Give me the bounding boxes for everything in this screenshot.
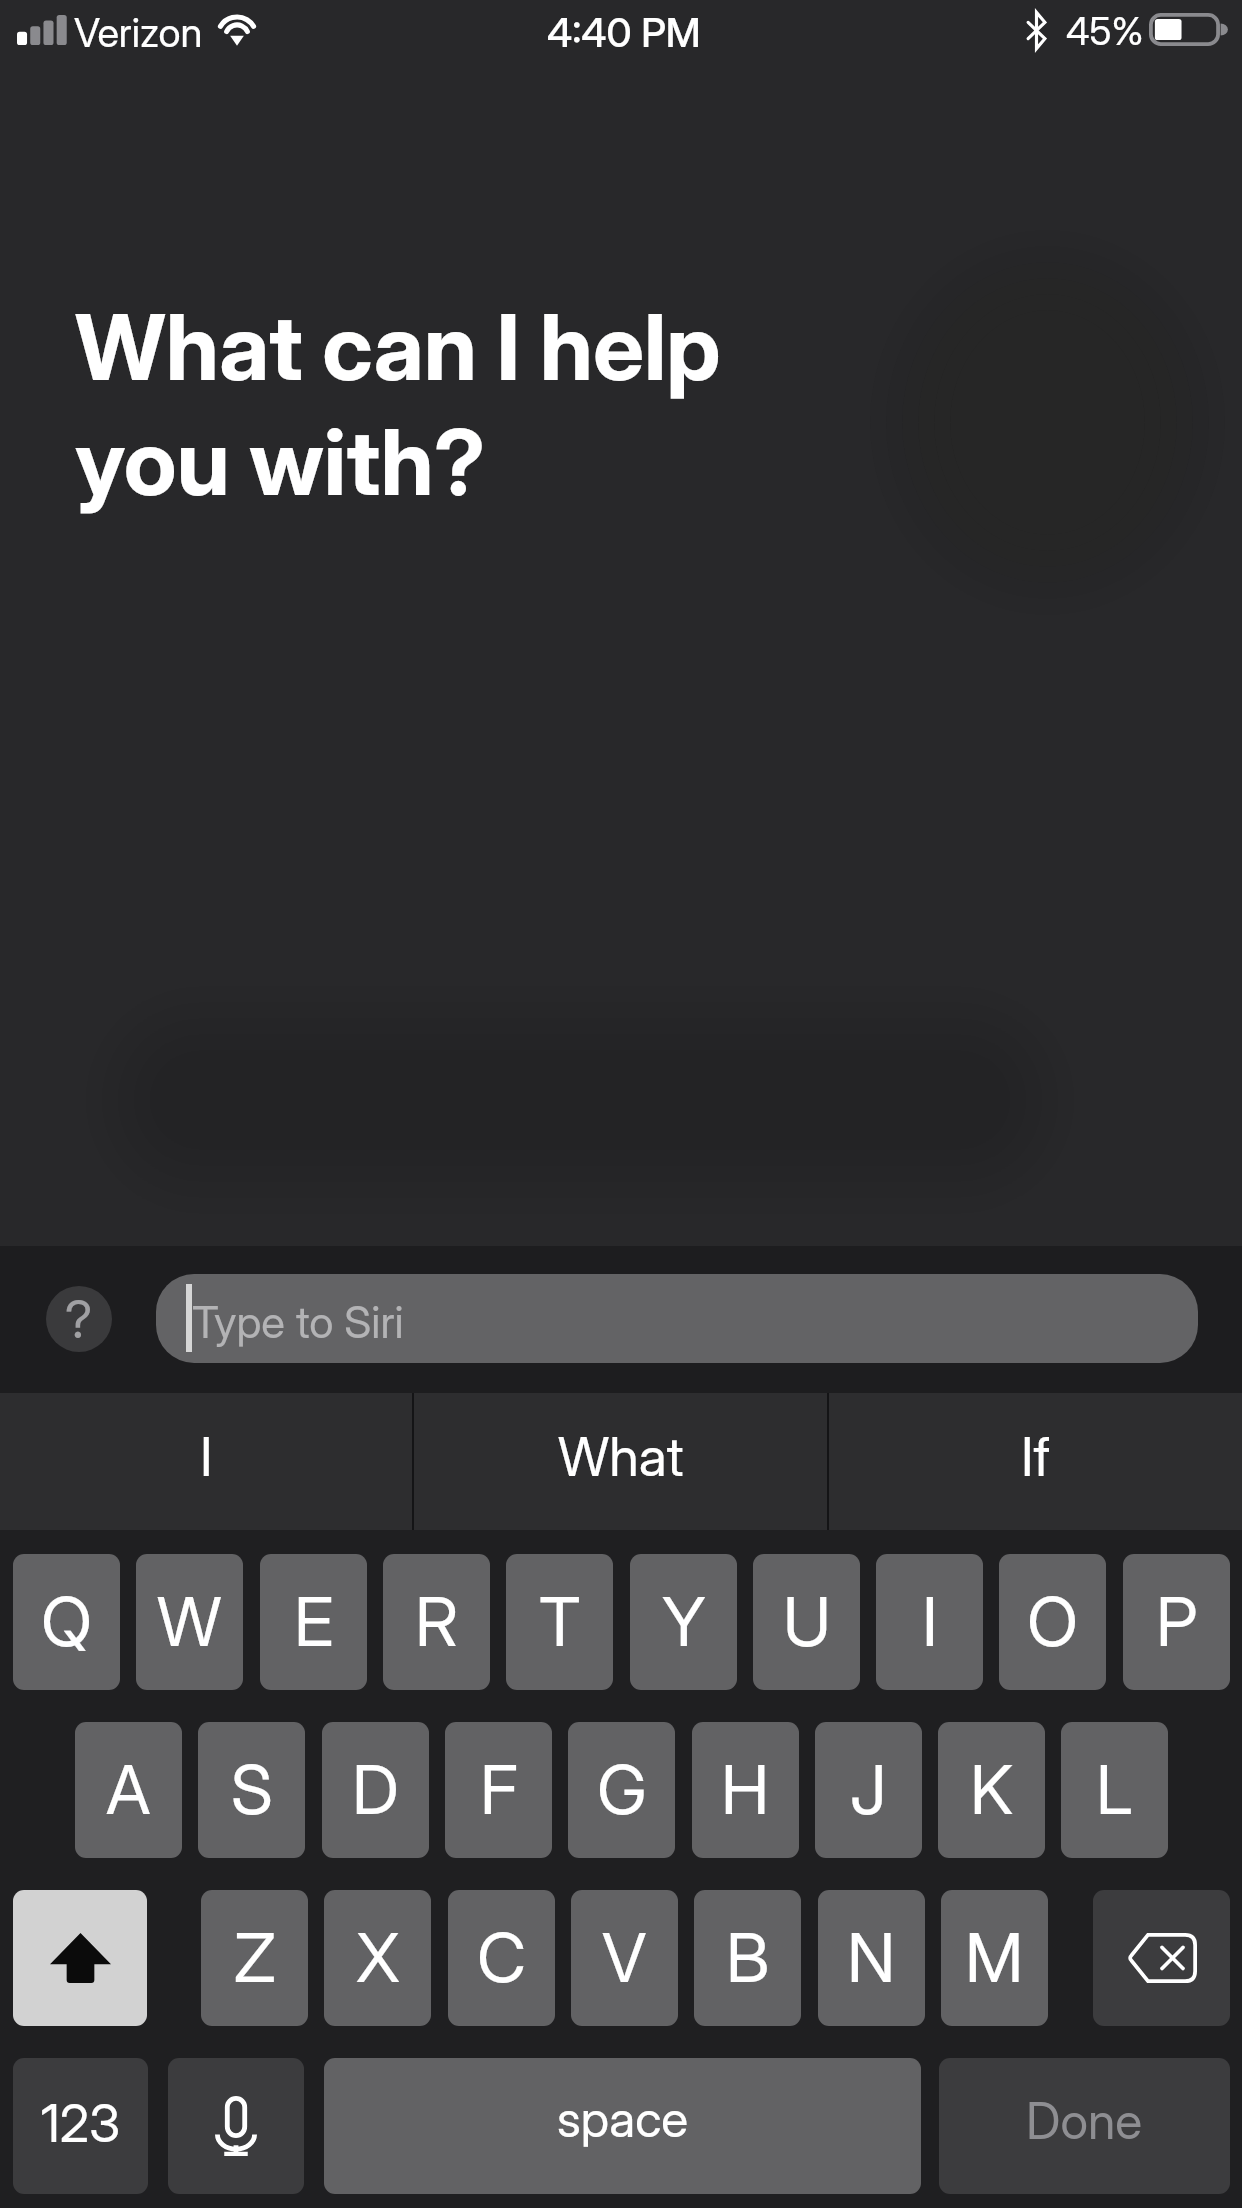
staticText: S [231,1748,273,1830]
staticText: Done [1026,2091,1143,2151]
staticText: N [847,1916,896,1998]
staticText: Type to Siri [192,1295,404,1348]
staticText: Y [662,1580,706,1662]
button[interactable]: B [694,1890,801,2026]
staticText: C [477,1916,527,1998]
button[interactable]: H [692,1722,799,1858]
staticText: O [1027,1580,1078,1662]
button[interactable]: W [136,1554,243,1690]
staticText: space [557,2089,689,2149]
staticText: V [602,1916,647,1998]
button[interactable]: Dictate [168,2058,304,2194]
staticText: T [539,1580,581,1662]
button[interactable]: space [324,2058,921,2194]
staticText: I [200,1424,213,1489]
staticText: ? [65,1288,93,1351]
button[interactable]: J [815,1722,922,1858]
staticText: G [597,1748,647,1830]
button[interactable]: D [322,1722,429,1858]
button[interactable]: What [414,1393,827,1530]
button[interactable]: X [324,1890,431,2026]
staticText: A [106,1748,151,1830]
staticText: J [850,1748,887,1830]
staticText: D [352,1748,399,1830]
button[interactable]: O [999,1554,1106,1690]
button[interactable]: L [1061,1722,1168,1858]
button[interactable]: U [753,1554,860,1690]
staticText: 123 [41,2092,121,2155]
staticText: 4:40 PM [547,8,701,56]
staticText: Q [41,1580,92,1662]
button[interactable]: C [448,1890,555,2026]
staticText: K [970,1748,1014,1830]
staticText: What can I help you with? [75,292,721,517]
button[interactable]: Siri help [46,1286,112,1352]
button[interactable]: I [876,1554,983,1690]
button[interactable]: Shift [13,1890,147,2026]
staticText: X [356,1916,400,1998]
staticText: 45% [1066,8,1144,54]
staticText: What [558,1424,684,1489]
button[interactable]: Backspace [1093,1890,1230,2026]
button[interactable]: E [260,1554,367,1690]
button[interactable]: R [383,1554,490,1690]
button[interactable]: V [571,1890,678,2026]
staticText: B [726,1916,770,1998]
staticText: M [965,1916,1024,1998]
staticText: H [721,1748,770,1830]
staticText: Verizon [74,8,203,56]
button[interactable]: I [0,1393,412,1530]
button[interactable]: S [198,1722,305,1858]
staticText: W [157,1580,222,1662]
button[interactable]: F [445,1722,552,1858]
staticText: P [1156,1580,1198,1662]
button[interactable]: 123 [13,2058,148,2194]
button[interactable]: N [818,1890,925,2026]
button[interactable]: Done [939,2058,1230,2194]
staticText: E [294,1580,334,1662]
button[interactable]: K [938,1722,1045,1858]
button[interactable]: Type to Siri [156,1274,1198,1363]
button[interactable]: T [506,1554,613,1690]
button[interactable]: Q [13,1554,120,1690]
button[interactable]: Y [630,1554,737,1690]
staticText: If [1021,1424,1051,1489]
button[interactable]: If [829,1393,1242,1530]
button[interactable]: P [1123,1554,1230,1690]
button[interactable]: A [75,1722,182,1858]
staticText: R [415,1580,458,1662]
staticText: I [922,1580,938,1662]
button[interactable]: G [568,1722,675,1858]
staticText: F [480,1748,518,1830]
staticText: L [1096,1748,1133,1830]
staticText: Z [234,1916,276,1998]
button[interactable]: Z [201,1890,308,2026]
button[interactable]: M [941,1890,1048,2026]
staticText: U [783,1580,831,1662]
